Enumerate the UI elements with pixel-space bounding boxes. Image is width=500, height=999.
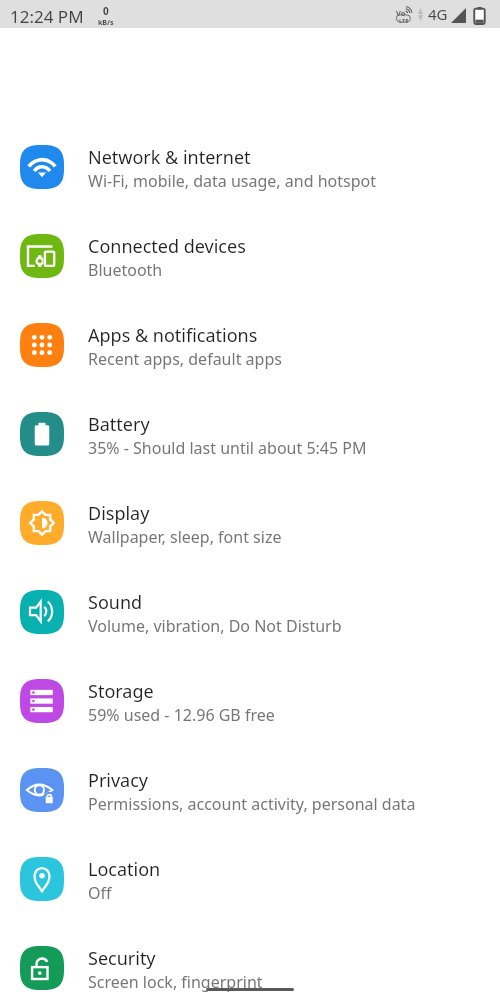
button[interactable]: Location [0,857,500,946]
staticText: 12:24 PM [10,5,84,28]
button[interactable]: Sound [0,590,500,679]
button[interactable]: Security [0,946,500,999]
staticText: Battery [88,412,150,437]
other: Home gesture handle [206,988,294,991]
staticText: 4G [428,4,448,24]
staticText: Privacy [88,768,149,793]
staticText: Sound [88,590,143,615]
staticText: kB/s [98,18,114,28]
staticText: Off [88,882,112,904]
button[interactable]: Network & internet [0,145,500,234]
button[interactable]: Display [0,501,500,590]
staticText: Volume, vibration, Do Not Disturb [88,615,342,637]
staticText: Wi-Fi, mobile, data usage, and hotspot [88,170,376,192]
staticText: Bluetooth [88,259,163,281]
staticText: Recent apps, default apps [88,348,282,370]
button[interactable]: Battery [0,412,500,501]
button[interactable]: Storage [0,679,500,768]
staticText: Connected devices [88,234,246,259]
staticText: 59% used - 12.96 GB free [88,704,275,726]
button[interactable]: Apps & notifications [0,323,500,412]
staticText: 35% - Should last until about 5:45 PM [88,437,367,459]
staticText: Permissions, account activity, personal … [88,793,416,815]
button[interactable]: Connected devices [0,234,500,323]
staticText: Vo [396,8,406,18]
staticText: Network & internet [88,145,251,170]
staticText: Screen lock, fingerprint [88,971,263,993]
staticText: Location [88,857,161,882]
staticText: Display [88,501,150,526]
button[interactable]: Privacy [0,768,500,857]
staticText: Storage [88,679,154,704]
staticText: Wallpaper, sleep, font size [88,526,282,548]
staticText: LTE [399,17,409,24]
staticText: 0 [103,4,109,18]
staticText: Apps & notifications [88,323,258,348]
staticText: Security [88,946,156,971]
